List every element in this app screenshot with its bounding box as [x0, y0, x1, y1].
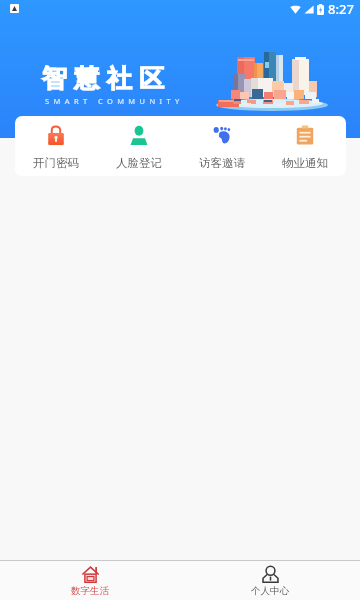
button[interactable]: 人脸登记	[97, 116, 180, 176]
button[interactable]: 访客邀请	[180, 116, 263, 176]
staticText: 物业通知	[282, 156, 328, 170]
button[interactable]: 物业通知	[263, 116, 346, 176]
staticText: 人脸登记	[116, 156, 162, 170]
staticText: 个人中心	[251, 585, 289, 597]
staticText: 访客邀请	[199, 156, 245, 170]
staticText: 开门密码	[33, 156, 79, 170]
staticText: 8:27	[328, 0, 354, 18]
staticText: SMART COMMUNITY	[45, 96, 184, 106]
staticText: 智慧社区	[38, 63, 168, 94]
button[interactable]: 数字生活	[0, 564, 180, 597]
button[interactable]: 开门密码	[15, 116, 97, 176]
staticText: 数字生活	[71, 585, 109, 597]
button[interactable]: 个人中心	[180, 564, 360, 597]
